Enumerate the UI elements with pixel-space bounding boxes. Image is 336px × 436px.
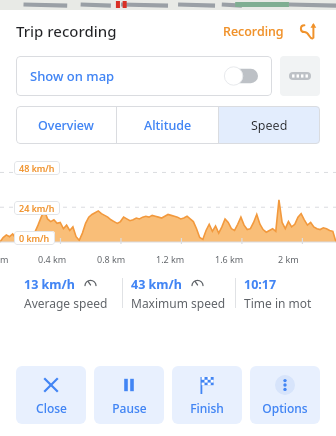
button[interactable]: Show on map [16, 56, 272, 96]
staticText: Recording [223, 23, 284, 40]
button[interactable]: Track appearance [280, 56, 320, 96]
staticText: 24 km/h [19, 202, 55, 214]
staticText: Overview [38, 117, 94, 134]
button[interactable]: Altitude [117, 106, 218, 144]
staticText: Show on map [30, 67, 115, 85]
staticText: 0.4 km [38, 253, 67, 265]
staticText: 10:17 [244, 276, 277, 293]
staticText: m [0, 253, 9, 265]
staticText: 1.6 km [215, 253, 244, 265]
button[interactable]: Pause [94, 366, 164, 424]
staticText: Speed [251, 117, 288, 134]
button[interactable]: Track [296, 19, 320, 43]
staticText: 0 km/h [19, 232, 50, 244]
staticText: 43 km/h [131, 276, 182, 293]
staticText: Options [262, 400, 308, 416]
staticText: Pause [112, 400, 147, 416]
staticText: 2 km [278, 253, 299, 265]
staticText: Finish [190, 400, 224, 416]
staticText: Trip recording [16, 21, 117, 41]
staticText: Time in mot [244, 295, 312, 311]
staticText: Average speed [24, 295, 108, 311]
button[interactable]: 13 km/h [16, 272, 122, 314]
button[interactable]: Options [250, 366, 320, 424]
button[interactable]: 10:17 [236, 272, 336, 314]
staticText: Altitude [144, 117, 192, 134]
button[interactable]: Close [16, 366, 86, 424]
staticText: Close [36, 400, 67, 416]
staticText: 48 km/h [19, 162, 55, 174]
button[interactable]: 43 km/h [123, 272, 235, 314]
button[interactable]: Recording [223, 23, 284, 40]
button[interactable]: Overview [16, 106, 116, 144]
button[interactable]: Finish [172, 366, 242, 424]
staticText: 1.2 km [156, 253, 185, 265]
staticText: 13 km/h [24, 276, 75, 293]
staticText: Maximum speed [131, 295, 226, 311]
button[interactable]: Speed [219, 106, 320, 144]
staticText: 0.8 km [97, 253, 126, 265]
